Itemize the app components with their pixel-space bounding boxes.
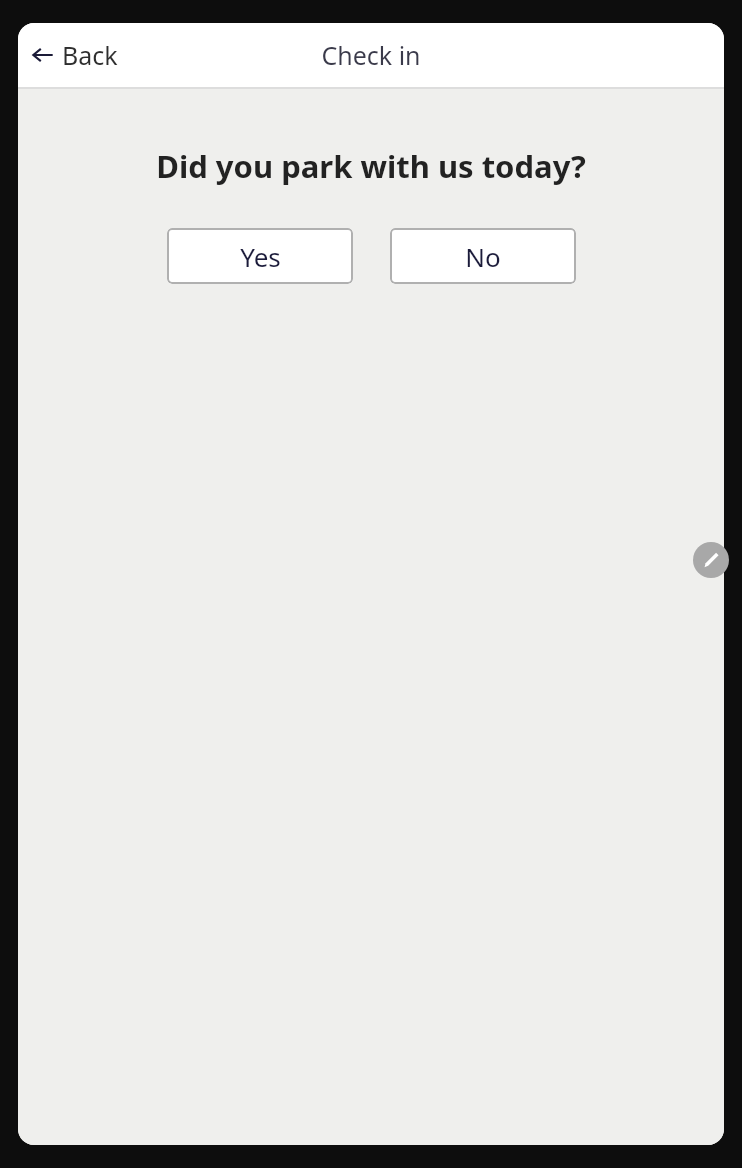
- staticText: Did you park with us today?: [156, 145, 586, 187]
- staticText: Check in: [321, 38, 421, 72]
- button[interactable]: Edit: [693, 542, 729, 578]
- staticText: Back: [62, 38, 118, 72]
- button[interactable]: No: [390, 228, 576, 284]
- staticText: Yes: [240, 239, 281, 274]
- button[interactable]: Back: [26, 32, 124, 78]
- button[interactable]: Yes: [167, 228, 353, 284]
- staticText: No: [465, 239, 501, 274]
